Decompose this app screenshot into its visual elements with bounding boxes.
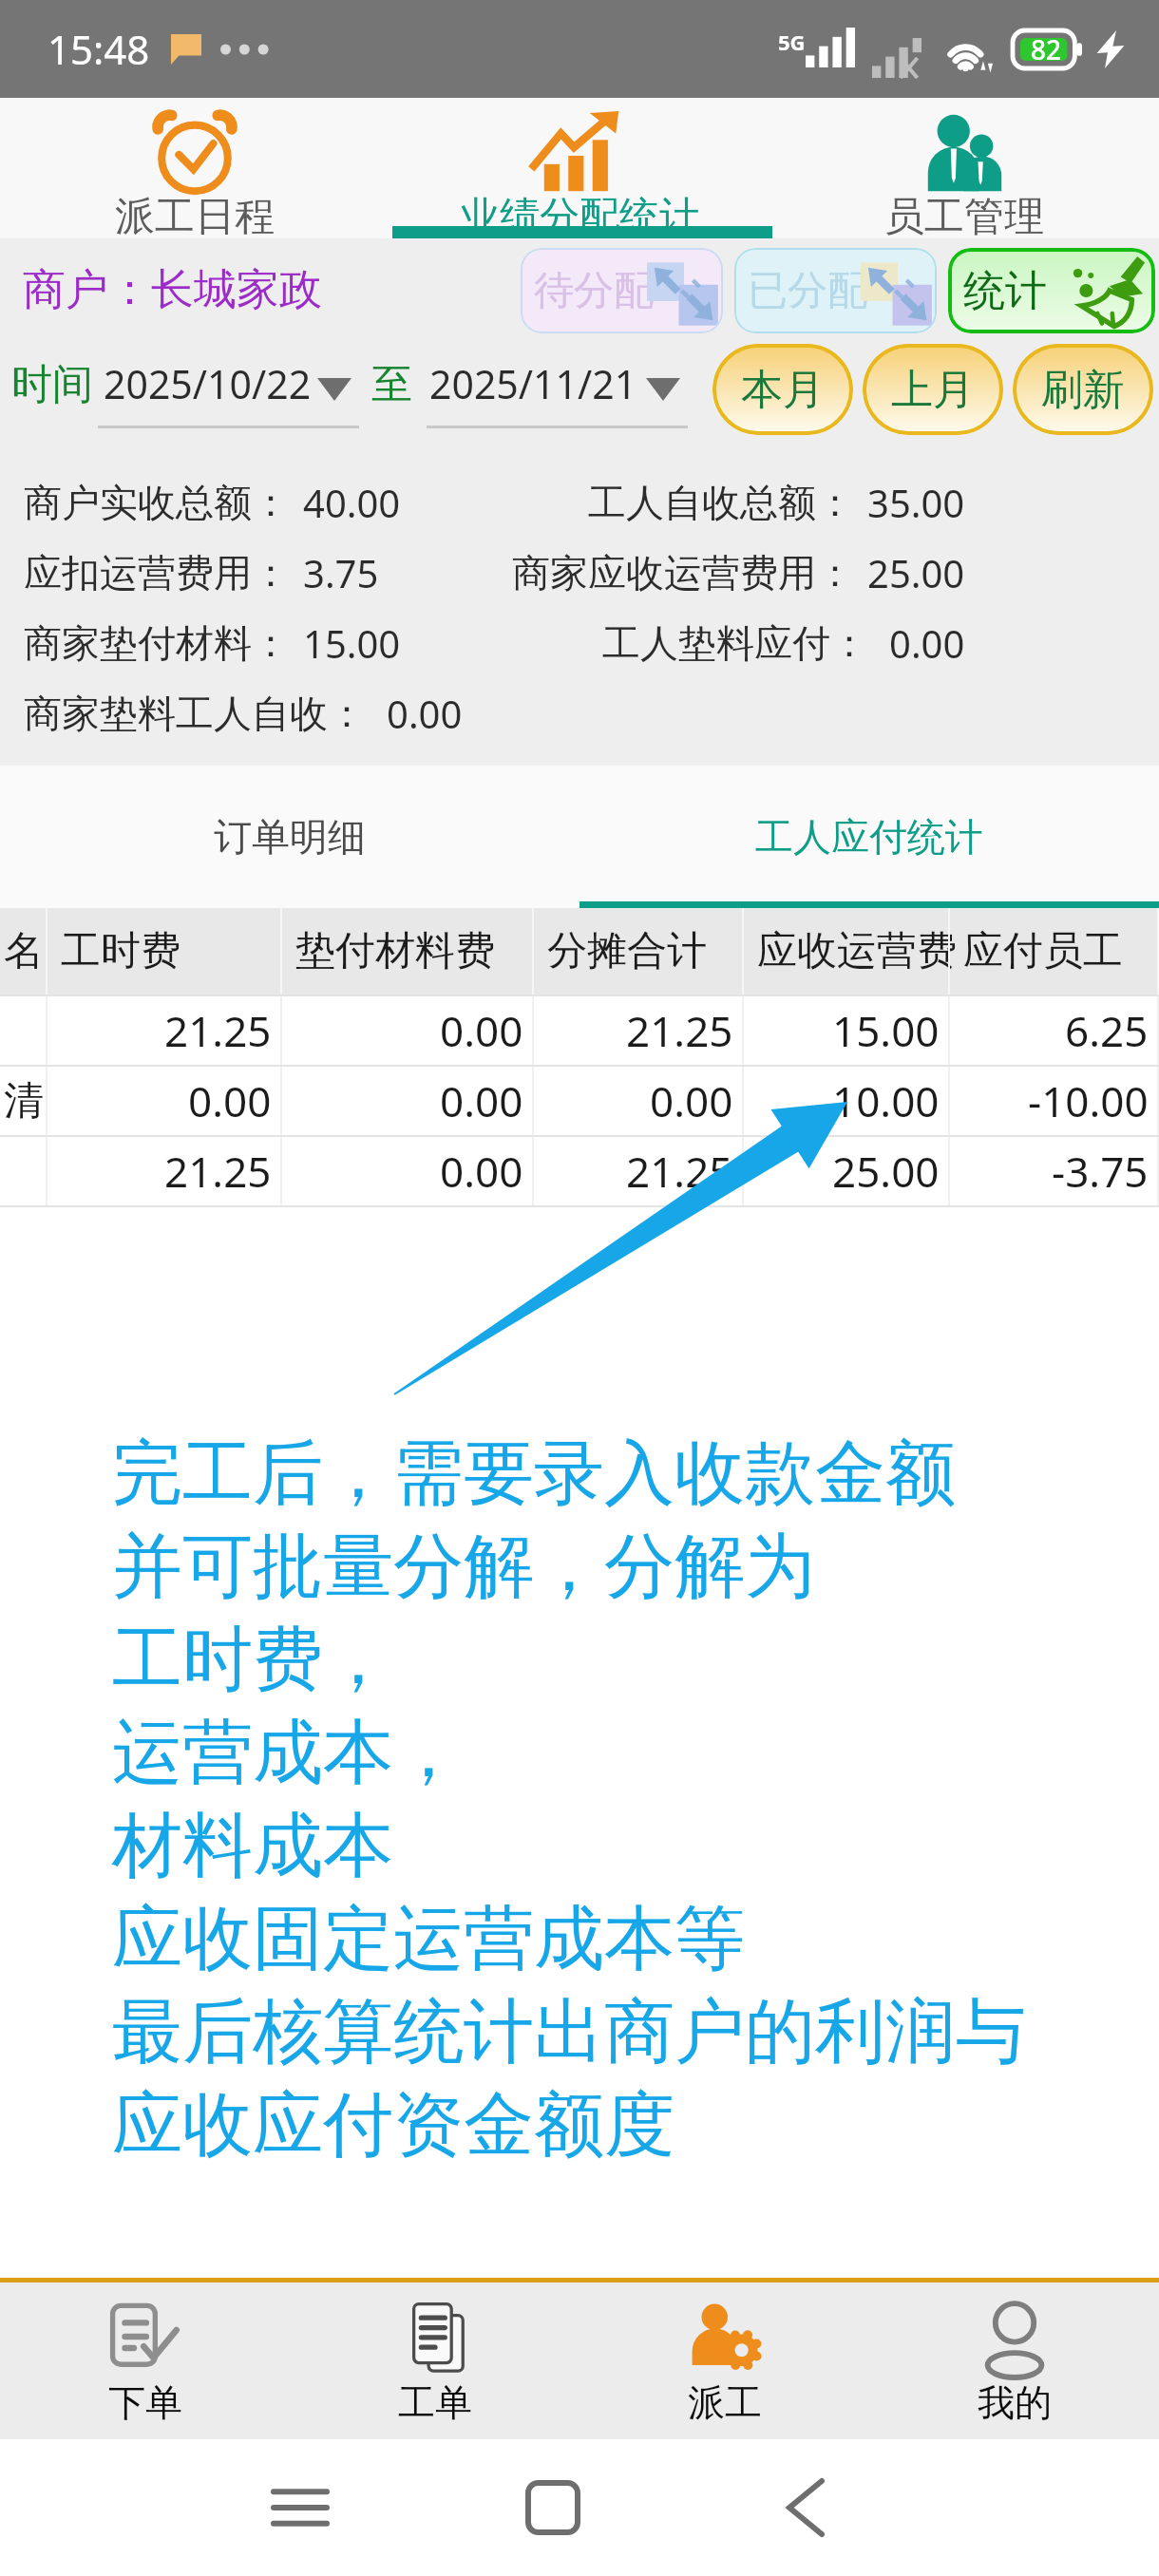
button[interactable]: 下单 [0,2282,290,2439]
staticText: 时间 [11,359,93,410]
staticText: 本月 [741,364,825,416]
button[interactable]: 本月 [712,344,853,435]
staticText: 0.00 [440,1002,523,1059]
button[interactable]: 员工管理 [769,98,1159,238]
button[interactable]: 派工日程 [0,98,389,238]
staticText: 0.00 [188,1072,272,1129]
staticText: 订单明细 [214,813,366,861]
staticText: 应付员工 [963,926,1123,976]
staticText: 并可批量分解，分解为 [112,1523,815,1611]
staticText: -10.00 [1028,1072,1149,1129]
staticText: 0.00 [889,617,965,669]
staticText: 派工日程 [115,192,275,242]
staticText: 15.00 [832,1002,940,1059]
staticText: 25.00 [867,547,965,598]
button[interactable]: 订单明细 [0,766,579,908]
button[interactable]: 派工 [579,2282,869,2439]
button[interactable]: Recent apps [256,2464,344,2551]
staticText: 运营成本， [112,1709,464,1797]
button[interactable]: 2025/11/21 [427,342,688,454]
staticText: 商户实收总额： [24,479,290,526]
staticText: 35.00 [867,477,965,528]
staticText: 上月 [891,364,975,416]
staticText: 统计 [963,265,1047,317]
staticText: 业绩分配统计 [460,192,699,242]
button[interactable]: 统计 [948,248,1155,333]
staticText: 21.25 [164,1143,272,1200]
staticText: 3.75 [303,547,379,598]
staticText: 0.00 [440,1143,523,1200]
staticText: 商户：长城家政 [23,263,322,317]
staticText: 应扣运营费用： [24,549,290,597]
button[interactable]: 上月 [863,344,1003,435]
staticText: 下单 [108,2379,182,2426]
staticText: 工人垫料应付： [602,619,868,667]
staticText: 2025/11/21 [429,357,637,410]
staticText: 垫付材料费 [295,926,495,976]
staticText: 商家垫付材料： [24,619,290,667]
button[interactable]: 我的 [869,2282,1159,2439]
staticText: -3.75 [1052,1143,1149,1200]
staticText: 已分配 [748,266,867,316]
staticText: 我的 [978,2379,1052,2426]
staticText: 0.00 [387,688,463,739]
button[interactable]: Home [509,2464,597,2551]
staticText: 名 [4,926,44,976]
staticText: 0.00 [650,1072,733,1129]
staticText: 刷新 [1041,364,1125,416]
staticText: 工时费， [112,1616,393,1704]
staticText: 工单 [398,2379,472,2426]
staticText: 15.00 [303,617,401,669]
staticText: 5G [778,28,806,56]
button[interactable]: Back [762,2464,849,2551]
staticText: 2025/10/22 [104,357,312,410]
staticText: 应收固定运营成本等 [112,1895,745,1983]
staticText: 21.25 [164,1002,272,1059]
staticText: 6.25 [1065,1002,1149,1059]
button[interactable]: 2025/10/22 [98,342,359,454]
staticText: 最后核算统计出商户的利润与 [112,1988,1026,2076]
staticText: 商家应收运营费用： [512,549,854,597]
staticText: 应收运营费 [757,926,957,976]
staticText: 至 [371,359,412,410]
staticText: 21.25 [626,1143,733,1200]
staticText: 21.25 [626,1002,733,1059]
staticText: 完工后，需要录入收款金额 [112,1430,956,1518]
staticText: 员工管理 [884,192,1044,242]
staticText: 40.00 [303,477,401,528]
staticText: 清 [4,1076,44,1127]
button[interactable]: 工单 [290,2282,579,2439]
staticText: 待分配 [534,266,654,316]
staticText: 82 [1031,31,1062,67]
button[interactable]: 工人应付统计 [579,766,1159,908]
staticText: 15:48 [47,22,150,76]
staticText: 0.00 [440,1072,523,1129]
staticText: 分摊合计 [547,926,707,976]
staticText: 10.00 [832,1072,940,1129]
staticText: 25.00 [832,1143,940,1200]
staticText: 工时费 [61,926,180,976]
button[interactable]: 待分配 [521,248,723,333]
button[interactable]: 已分配 [734,248,937,333]
staticText: 应收应付资金额度 [112,2081,674,2169]
staticText: 派工 [688,2379,762,2426]
button[interactable]: 刷新 [1013,344,1153,435]
staticText: 工人自收总额： [588,479,854,526]
staticText: 工人应付统计 [755,813,983,861]
staticText: 商家垫料工人自收： [24,690,366,737]
button[interactable]: 业绩分配统计 [389,98,769,238]
staticText: 材料成本 [112,1802,393,1890]
